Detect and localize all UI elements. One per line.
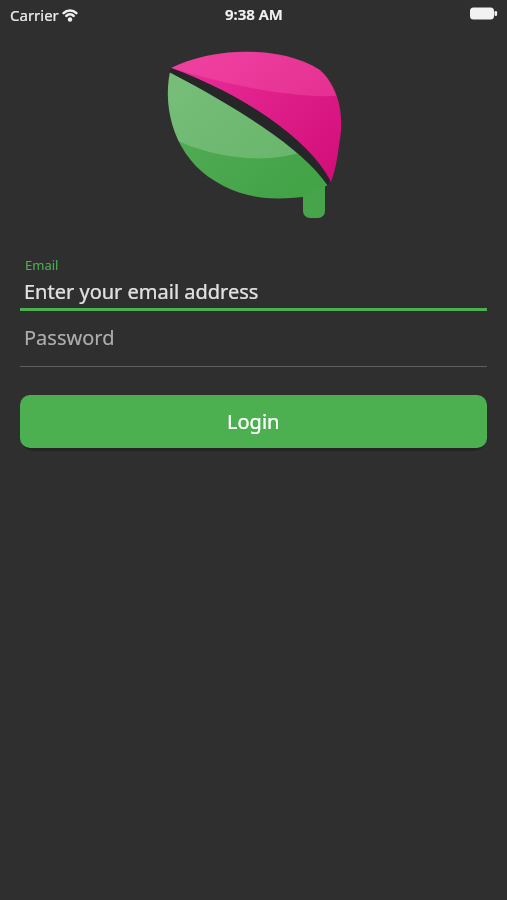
staticText: Carrier bbox=[10, 5, 59, 25]
staticText: Email bbox=[25, 256, 59, 274]
staticText: Password bbox=[24, 324, 115, 351]
staticText: Enter your email address bbox=[24, 278, 259, 305]
staticText: 9:38 AM bbox=[225, 4, 283, 24]
staticText: Login bbox=[227, 408, 280, 435]
button[interactable]: Password bbox=[0, 320, 507, 368]
button[interactable]: Email bbox=[0, 250, 507, 312]
button[interactable]: Login bbox=[20, 395, 487, 448]
